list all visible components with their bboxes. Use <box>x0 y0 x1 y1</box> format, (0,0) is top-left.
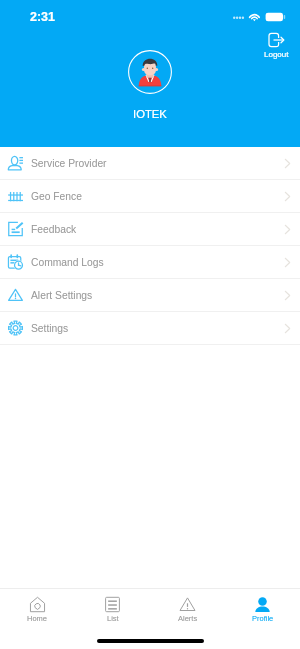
button[interactable]: Service Provider <box>0 147 300 179</box>
button[interactable]: Home <box>0 588 75 635</box>
staticText: Settings <box>31 323 69 335</box>
staticText: IOTEK <box>133 108 167 121</box>
button[interactable]: Alerts <box>150 588 225 635</box>
button[interactable]: Feedback <box>0 213 300 245</box>
staticText: Feedback <box>31 224 77 236</box>
staticText: List <box>107 614 119 622</box>
staticText: Home <box>27 614 48 622</box>
button[interactable]: Profile <box>225 588 300 635</box>
staticText: Alerts <box>178 614 198 622</box>
button[interactable]: List <box>75 588 150 635</box>
staticText: Service Provider <box>31 158 107 170</box>
staticText: Command Logs <box>31 257 104 269</box>
staticText: Geo Fence <box>31 191 82 203</box>
button[interactable]: Geo Fence <box>0 180 300 212</box>
staticText: Alert Settings <box>31 290 93 302</box>
staticText: Logout <box>264 50 289 59</box>
button[interactable]: Alert Settings <box>0 279 300 311</box>
button[interactable]: Settings <box>0 312 300 344</box>
button[interactable]: Command Logs <box>0 246 300 278</box>
button[interactable]: Logout <box>259 30 294 62</box>
staticText: Profile <box>252 614 274 622</box>
staticText: 2:31 <box>30 10 56 24</box>
